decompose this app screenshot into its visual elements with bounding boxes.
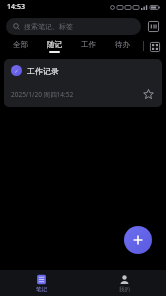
button[interactable]: 工作记录	[4, 59, 162, 107]
staticText: 搜索笔记、标签	[24, 22, 73, 31]
staticText: 待办	[115, 40, 130, 49]
staticText: 我的	[119, 286, 130, 293]
button[interactable]: 全部	[4, 40, 37, 53]
staticText: 2025/1/20 周四14:52	[11, 90, 74, 99]
staticText: 工作	[81, 40, 96, 49]
button[interactable]: Scan	[147, 20, 160, 33]
staticText: 全部	[13, 40, 28, 49]
staticText: 14:53	[7, 2, 25, 12]
button[interactable]: 工作	[71, 40, 105, 53]
staticText: 随记	[47, 40, 62, 49]
button[interactable]: 待办	[105, 40, 139, 53]
staticText: 笔记	[36, 286, 47, 293]
button[interactable]: 随记	[37, 40, 71, 53]
button[interactable]: Grid view	[148, 40, 161, 53]
button[interactable]: New note	[124, 226, 152, 254]
button[interactable]: 笔记	[0, 274, 83, 293]
button[interactable]: Favorite	[141, 87, 155, 101]
staticText: 工作记录	[27, 66, 59, 76]
button[interactable]: 搜索笔记、标签	[6, 18, 141, 35]
button[interactable]: 我的	[83, 274, 166, 293]
